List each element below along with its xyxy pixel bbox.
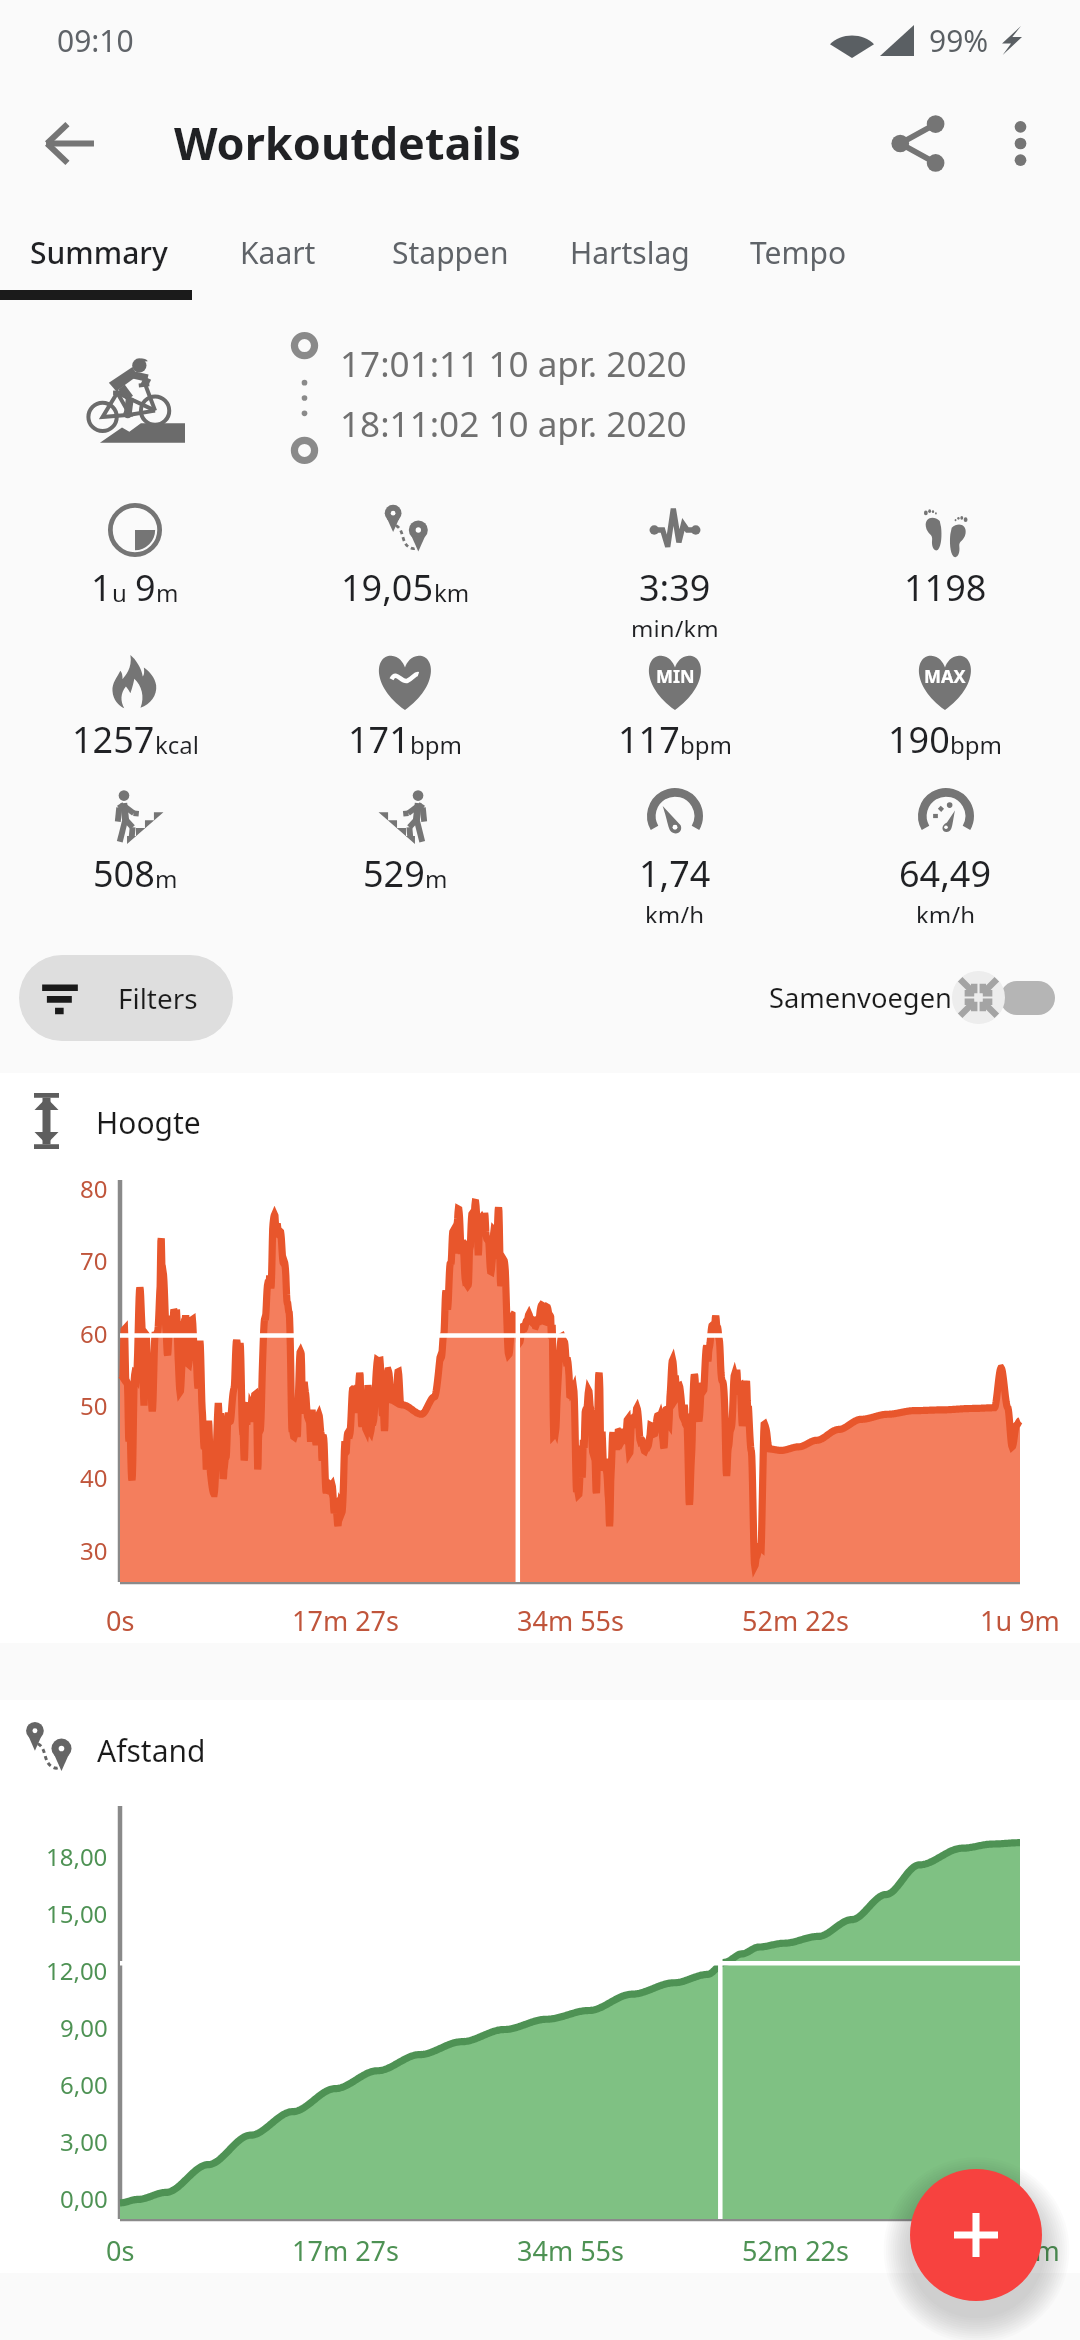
- button[interactable]: 1257: [0, 654, 270, 789]
- button[interactable]: 1,74: [540, 788, 810, 923]
- button[interactable]: 1198: [810, 502, 1080, 637]
- button[interactable]: 171: [270, 654, 540, 789]
- button[interactable]: Share: [864, 89, 972, 197]
- staticText: 12,00: [46, 1954, 108, 1987]
- staticText: m: [425, 862, 448, 895]
- button[interactable]: 64,49: [810, 788, 1080, 923]
- staticText: km: [434, 576, 470, 609]
- button[interactable]: Summary: [12, 205, 186, 300]
- staticText: 52m 22s: [742, 2232, 849, 2269]
- staticText: 1257: [72, 715, 155, 764]
- staticText: Summary: [30, 232, 168, 273]
- staticText: 40: [80, 1461, 108, 1494]
- staticText: 3,00: [60, 2125, 108, 2158]
- staticText: bpm: [410, 728, 462, 761]
- staticText: 0,00: [60, 2182, 108, 2215]
- staticText: Kaart: [240, 232, 316, 273]
- staticText: 117: [618, 715, 680, 764]
- button[interactable]: MIN: [540, 654, 810, 789]
- button[interactable]: 3:39: [540, 502, 810, 637]
- staticText: kcal: [155, 728, 199, 761]
- staticText: 1: [91, 563, 112, 612]
- staticText: 17:01:11 10 apr. 2020: [340, 339, 687, 387]
- staticText: bpm: [680, 728, 732, 761]
- staticText: Workoutdetails: [174, 112, 521, 173]
- button[interactable]: More options: [972, 95, 1068, 191]
- staticText: Filters: [118, 979, 198, 1017]
- staticText: 19,05: [341, 563, 434, 612]
- staticText: 80: [80, 1172, 108, 1205]
- staticText: 50: [80, 1389, 108, 1422]
- staticText: MAX: [924, 664, 966, 689]
- staticText: 1,74: [639, 849, 711, 898]
- staticText: 9: [135, 563, 156, 612]
- staticText: 0s: [106, 1602, 135, 1639]
- staticText: 9,00: [60, 2011, 108, 2044]
- staticText: m: [156, 576, 179, 609]
- staticText: 17m 27s: [292, 2232, 399, 2269]
- staticText: 30: [80, 1534, 108, 1567]
- button[interactable]: Add: [910, 2169, 1042, 2301]
- staticText: 0s: [106, 2232, 135, 2269]
- button[interactable]: 529: [270, 788, 540, 923]
- staticText: km/h: [645, 898, 705, 923]
- staticText: 6,00: [60, 2068, 108, 2101]
- button[interactable]: 508: [0, 788, 270, 923]
- button[interactable]: 1: [0, 502, 270, 637]
- staticText: 1u 9m: [980, 2232, 1060, 2269]
- staticText: 17m 27s: [292, 1602, 399, 1639]
- button[interactable]: Hartslag: [552, 205, 708, 300]
- staticText: 1u 9m: [980, 1602, 1060, 1639]
- staticText: 34m 55s: [517, 1602, 624, 1639]
- staticText: Hartslag: [570, 232, 690, 273]
- staticText: 64,49: [899, 849, 992, 898]
- staticText: Tempo: [750, 232, 847, 273]
- staticText: 09:10: [57, 20, 134, 61]
- staticText: 15,00: [46, 1897, 108, 1930]
- staticText: 190: [888, 715, 950, 764]
- staticText: Samenvoegen: [769, 979, 952, 1016]
- staticText: 99%: [929, 20, 989, 61]
- button[interactable]: Stappen: [374, 205, 527, 300]
- staticText: km/h: [916, 898, 976, 923]
- button[interactable]: Samenvoegen: [765, 969, 1055, 1026]
- staticText: 529: [363, 849, 425, 898]
- button[interactable]: MAX: [810, 654, 1080, 789]
- staticText: 18,00: [46, 1840, 108, 1873]
- staticText: 34m 55s: [517, 2232, 624, 2269]
- staticText: MIN: [656, 664, 695, 689]
- staticText: u: [112, 576, 127, 609]
- staticText: m: [155, 862, 178, 895]
- button[interactable]: Back: [18, 92, 120, 194]
- staticText: min/km: [631, 612, 719, 637]
- staticText: bpm: [950, 728, 1002, 761]
- staticText: 60: [80, 1317, 108, 1350]
- staticText: 3:39: [639, 563, 711, 612]
- button[interactable]: Tempo: [732, 205, 865, 300]
- staticText: 52m 22s: [742, 1602, 849, 1639]
- staticText: Stappen: [392, 232, 509, 273]
- button[interactable]: 19,05: [270, 502, 540, 637]
- staticText: Hoogte: [96, 1102, 201, 1143]
- staticText: 18:11:02 10 apr. 2020: [340, 399, 687, 447]
- staticText: 171: [348, 715, 410, 764]
- button[interactable]: Filters: [19, 955, 233, 1041]
- staticText: 70: [80, 1244, 108, 1277]
- button[interactable]: Kaart: [222, 205, 334, 300]
- staticText: 1198: [904, 563, 987, 612]
- staticText: 508: [93, 849, 155, 898]
- staticText: Afstand: [97, 1730, 206, 1771]
